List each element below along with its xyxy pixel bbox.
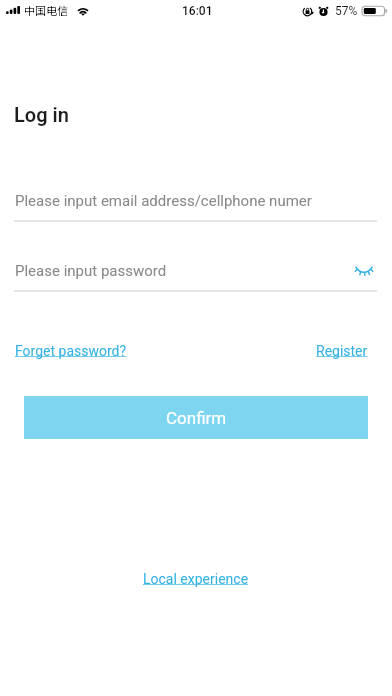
staticText: Confirm [166, 408, 227, 428]
staticText: 中国电信 [24, 2, 68, 18]
button[interactable]: Confirm [24, 396, 368, 439]
staticText: Please input email address/cellphone num… [15, 192, 312, 210]
staticText: 57% [335, 4, 358, 18]
button[interactable]: Forget password? [15, 343, 127, 359]
button[interactable]: Local experience [143, 571, 249, 587]
staticText: Log in [14, 103, 69, 126]
staticText: Please input password [15, 262, 167, 280]
staticText: 16:01 [182, 4, 213, 18]
button[interactable]: Show password [348, 257, 380, 285]
button[interactable]: Register [316, 343, 368, 359]
